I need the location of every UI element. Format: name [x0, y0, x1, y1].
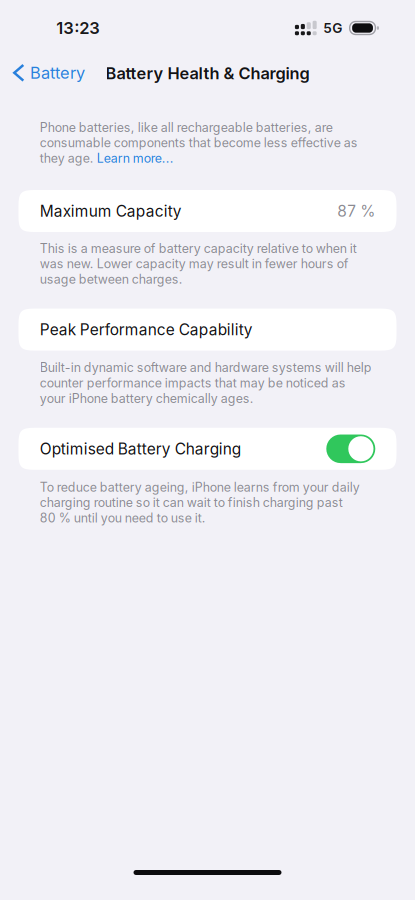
staticText: 87 % — [337, 202, 375, 220]
staticText: This is a measure of battery capacity re… — [40, 241, 357, 256]
staticText: Peak Performance Capability — [40, 320, 253, 339]
button[interactable]: Peak Performance Capability — [18, 309, 396, 351]
staticText: usage between charges. — [40, 272, 183, 287]
button[interactable]: Maximum Capacity — [18, 190, 396, 232]
staticText: Maximum Capacity — [40, 202, 182, 220]
staticText: they age. — [40, 151, 97, 166]
button[interactable]: Optimised Battery Charging — [18, 428, 396, 470]
button[interactable]: Battery — [0, 59, 85, 87]
button[interactable]: Learn more... — [97, 151, 174, 166]
staticText: 13:23 — [56, 18, 100, 38]
staticText: charging routine so it can wait to finis… — [40, 495, 343, 510]
staticText: To reduce battery ageing, iPhone learns … — [40, 480, 360, 495]
staticText: consumable components that become less e… — [40, 135, 358, 150]
staticText: Battery Health & Charging — [105, 63, 309, 83]
staticText: was new. Lower capacity may result in fe… — [40, 256, 349, 271]
staticText: counter performance impacts that may be … — [40, 375, 346, 390]
staticText: Phone batteries, like all rechargeable b… — [40, 120, 333, 135]
staticText: Optimised Battery Charging — [40, 439, 241, 458]
staticText: 80 % until you need to use it. — [40, 510, 206, 525]
staticText: Battery — [30, 63, 85, 83]
staticText: Built-in dynamic software and hardware s… — [40, 360, 372, 375]
staticText: 5G — [323, 20, 342, 36]
staticText: Learn more... — [97, 151, 174, 166]
staticText: your iPhone battery chemically ages. — [40, 391, 254, 406]
